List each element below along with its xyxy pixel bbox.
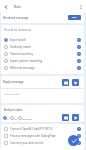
- button[interactable]: ADD: [68, 15, 81, 20]
- staticText: Process messages with DialogFlow: [10, 134, 77, 138]
- button[interactable]: Help: [77, 52, 81, 56]
- button[interactable]: Add image: [62, 79, 69, 86]
- button[interactable]: 1: [3, 116, 9, 120]
- button[interactable]: Connect your web service: [1, 139, 84, 146]
- staticText: Connect your web service: [10, 141, 77, 145]
- button[interactable]: Random: [18, 116, 32, 120]
- button[interactable]: Reply settings: [72, 114, 79, 121]
- staticText: Connect OpenAI ChatGPT/GPT-4: [10, 127, 77, 131]
- button[interactable]: Help: [77, 59, 81, 63]
- staticText: Expert pattern matching: [10, 59, 77, 63]
- staticText: ADD: [72, 16, 77, 19]
- staticText: Random: [22, 117, 32, 120]
- staticText: Should be sent: [4, 93, 21, 96]
- button[interactable]: Edit replies: [62, 114, 69, 121]
- button[interactable]: Process messages with DialogFlow: [1, 132, 84, 139]
- staticText: Should be answered: [4, 28, 31, 32]
- staticText: Multiple replies: [4, 108, 23, 111]
- staticText: 1: [7, 117, 9, 120]
- button[interactable]: Help: [77, 134, 81, 138]
- button[interactable]: Save rule: [68, 135, 79, 146]
- staticText: Reply message: [3, 80, 24, 84]
- button[interactable]: Insert variable: [72, 79, 79, 86]
- button[interactable]: Help: [77, 66, 81, 70]
- button[interactable]: Connect OpenAI ChatGPT/GPT-4: [1, 125, 84, 132]
- button[interactable]: Exact match: [1, 36, 84, 43]
- button[interactable]: Help: [77, 38, 81, 42]
- button[interactable]: Pattern matching: [1, 50, 84, 57]
- staticText: Similarity match: [10, 45, 77, 49]
- staticText: Exact match: [10, 38, 77, 42]
- button[interactable]: All: [10, 116, 17, 120]
- button[interactable]: Help: [77, 127, 81, 131]
- staticText: Welcome message: [10, 66, 77, 70]
- button[interactable]: Similarity match: [1, 43, 84, 50]
- staticText: Pattern matching: [10, 52, 77, 56]
- button[interactable]: Welcome message: [1, 64, 84, 71]
- button[interactable]: Help: [77, 45, 81, 49]
- staticText: Received message: [3, 16, 29, 20]
- staticText: All: [14, 117, 17, 120]
- button[interactable]: Help: [77, 141, 81, 145]
- button[interactable]: Back: [0, 1, 11, 12]
- staticText: Rule: [14, 4, 22, 9]
- button[interactable]: Expert pattern matching: [1, 57, 84, 64]
- button[interactable]: More options: [75, 1, 86, 12]
